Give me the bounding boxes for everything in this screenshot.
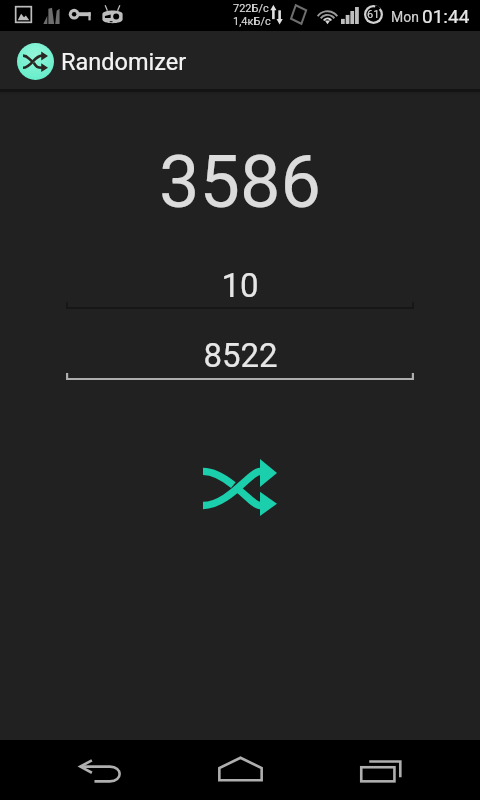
button[interactable]: 10	[66, 236, 414, 310]
staticText: Randomizer	[61, 48, 187, 76]
staticText: 61	[367, 8, 380, 21]
staticText: 722Б/c	[233, 2, 269, 15]
staticText: 3586	[159, 140, 321, 224]
button[interactable]: Back	[60, 740, 140, 800]
button[interactable]: Recent apps	[341, 740, 421, 800]
button[interactable]: 8522	[66, 306, 414, 380]
staticText: 1,4кБ/c	[233, 15, 271, 28]
staticText: 10	[221, 266, 259, 305]
staticText: Mon	[391, 9, 419, 25]
staticText: 01:44	[422, 5, 470, 27]
staticText: 8522	[203, 336, 278, 375]
button[interactable]: Shuffle	[192, 449, 288, 526]
button[interactable]: Home	[200, 740, 280, 800]
